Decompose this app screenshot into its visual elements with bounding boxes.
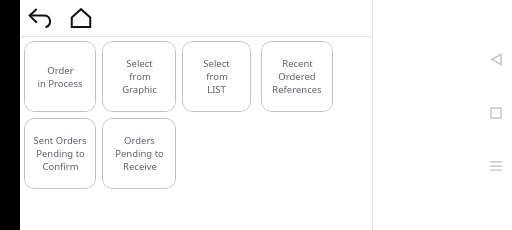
staticText: Orders bbox=[124, 134, 155, 147]
button[interactable]: Back bbox=[24, 3, 58, 33]
button[interactable]: Orders bbox=[102, 118, 176, 189]
button[interactable]: System back bbox=[483, 46, 509, 72]
staticText: Sent Orders bbox=[33, 134, 87, 147]
staticText: Pending to bbox=[115, 147, 164, 160]
staticText: from bbox=[129, 70, 151, 83]
staticText: References bbox=[272, 83, 322, 96]
button[interactable]: Select bbox=[182, 41, 251, 112]
staticText: from bbox=[206, 70, 228, 83]
staticText: Pending to bbox=[36, 147, 85, 160]
staticText: LIST bbox=[207, 83, 226, 96]
staticText: Select bbox=[126, 57, 153, 70]
button[interactable]: Select bbox=[102, 41, 176, 112]
button[interactable]: Menu bbox=[483, 153, 509, 179]
staticText: Graphic bbox=[122, 83, 157, 96]
button[interactable]: System home bbox=[483, 100, 509, 126]
staticText: Confirm bbox=[42, 160, 79, 173]
staticText: Receive bbox=[123, 160, 157, 173]
staticText: Order bbox=[47, 64, 74, 77]
staticText: Recent bbox=[282, 57, 313, 70]
staticText: in Process bbox=[37, 77, 83, 90]
button[interactable]: Recent bbox=[261, 41, 333, 112]
button[interactable]: Order bbox=[24, 41, 96, 112]
staticText: Ordered bbox=[278, 70, 316, 83]
button[interactable]: Sent Orders bbox=[24, 118, 96, 189]
button[interactable]: Home bbox=[64, 3, 98, 33]
staticText: Select bbox=[203, 57, 230, 70]
